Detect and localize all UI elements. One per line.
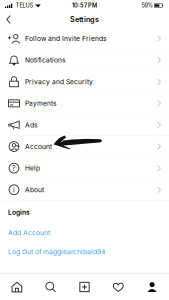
staticText: Payments bbox=[25, 99, 57, 107]
button[interactable]: i bbox=[0, 179, 169, 201]
button[interactable]: Profile bbox=[135, 274, 169, 300]
button[interactable]: Privacy and Security bbox=[0, 71, 169, 93]
button[interactable]: Back bbox=[0, 12, 19, 27]
button[interactable]: Notifications bbox=[0, 50, 169, 71]
staticText: 59% bbox=[141, 2, 152, 9]
button[interactable]: New Post bbox=[68, 274, 101, 300]
staticText: Add Account bbox=[8, 229, 50, 237]
staticText: Help bbox=[25, 164, 40, 172]
staticText: Settings bbox=[70, 15, 99, 24]
staticText: Ads bbox=[25, 121, 38, 129]
button[interactable]: ? bbox=[0, 158, 169, 179]
staticText: Follow and Invite Friends bbox=[25, 34, 107, 43]
button[interactable]: Home bbox=[0, 274, 34, 300]
staticText: Logins bbox=[8, 208, 30, 216]
staticText: About bbox=[25, 186, 44, 194]
staticText: Privacy and Security bbox=[25, 78, 93, 86]
button[interactable]: Follow and Invite Friends bbox=[0, 28, 169, 50]
staticText: 10:57 PM bbox=[72, 2, 97, 9]
staticText: i bbox=[13, 186, 15, 194]
button[interactable]: Search bbox=[34, 274, 68, 300]
staticText: Account bbox=[25, 142, 52, 151]
staticText: TELUS bbox=[15, 2, 33, 9]
button[interactable]: Activity bbox=[101, 274, 135, 300]
button[interactable]: Account bbox=[0, 136, 169, 158]
staticText: ? bbox=[12, 164, 16, 172]
staticText: Log Out of maggiearchibald94 bbox=[8, 248, 105, 256]
button[interactable]: Payments bbox=[0, 93, 169, 114]
button[interactable]: Log Out of maggiearchibald94 bbox=[8, 242, 105, 261]
button[interactable]: Add Account bbox=[8, 223, 50, 242]
button[interactable]: Ads bbox=[0, 114, 169, 136]
staticText: Notifications bbox=[25, 56, 66, 64]
